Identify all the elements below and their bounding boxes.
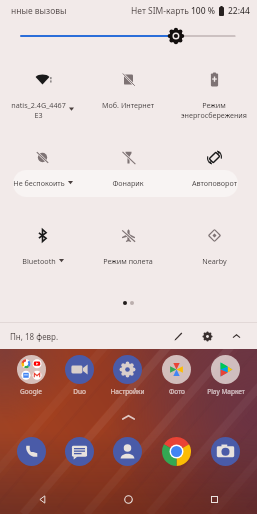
- button[interactable]: Camera: [201, 437, 250, 467]
- button[interactable]: Фото: [152, 355, 201, 403]
- staticText: нные вызовы: [11, 5, 67, 17]
- button[interactable]: Google: [7, 355, 55, 403]
- staticText: Nearby: [202, 256, 227, 266]
- button[interactable]: Режим полета: [85, 223, 171, 301]
- staticText: Моб. Интернет: [102, 100, 154, 110]
- button[interactable]: Phone: [7, 437, 55, 467]
- button[interactable]: Настройки: [103, 355, 152, 403]
- staticText: энергосбережения: [181, 110, 247, 120]
- staticText: natis_2.4G_4467: [11, 100, 66, 110]
- button[interactable]: Recents: [171, 484, 257, 514]
- button[interactable]: Edit: [168, 326, 188, 346]
- staticText: Google: [20, 387, 42, 396]
- staticText: 22:44: [228, 5, 250, 17]
- staticText: Нет SIM-карть: [131, 5, 189, 17]
- button[interactable]: Settings: [197, 326, 217, 346]
- staticText: Пн, 18 февр.: [10, 331, 59, 342]
- button[interactable]: Nearby: [171, 223, 257, 301]
- staticText: Настройки: [110, 387, 145, 396]
- staticText: Play Маркет: [207, 387, 245, 396]
- button[interactable]: Не беспокоить: [0, 145, 85, 223]
- staticText: 100 %: [191, 5, 216, 17]
- button[interactable]: Chrome: [152, 437, 201, 467]
- staticText: Режим полета: [103, 256, 153, 266]
- staticText: Bluetooth: [22, 256, 56, 266]
- button[interactable]: Моб. Интернет: [85, 67, 171, 145]
- staticText: Автоповорот: [192, 178, 237, 188]
- button[interactable]: Режим: [171, 67, 257, 145]
- staticText: Режим: [202, 100, 226, 110]
- staticText: Фото: [169, 387, 185, 396]
- button[interactable]: Автоповорот: [171, 145, 257, 223]
- staticText: Duo: [73, 387, 86, 396]
- button[interactable]: Collapse: [226, 326, 246, 346]
- button[interactable]: Bluetooth: [0, 223, 85, 301]
- staticText: Фонарик: [112, 178, 144, 188]
- button[interactable]: Play Маркет: [201, 355, 250, 403]
- staticText: E3: [34, 110, 43, 120]
- button[interactable]: Messages: [55, 437, 103, 467]
- button[interactable]: Фонарик: [85, 145, 171, 223]
- button[interactable]: Duo: [55, 355, 103, 403]
- staticText: Не беспокоить: [13, 178, 65, 188]
- button[interactable]: Brightness: [0, 22, 257, 50]
- button[interactable]: Home: [85, 484, 171, 514]
- button[interactable]: Back: [0, 484, 85, 514]
- button[interactable]: natis_2.4G_4467: [0, 67, 85, 145]
- button[interactable]: Contacts: [103, 437, 152, 467]
